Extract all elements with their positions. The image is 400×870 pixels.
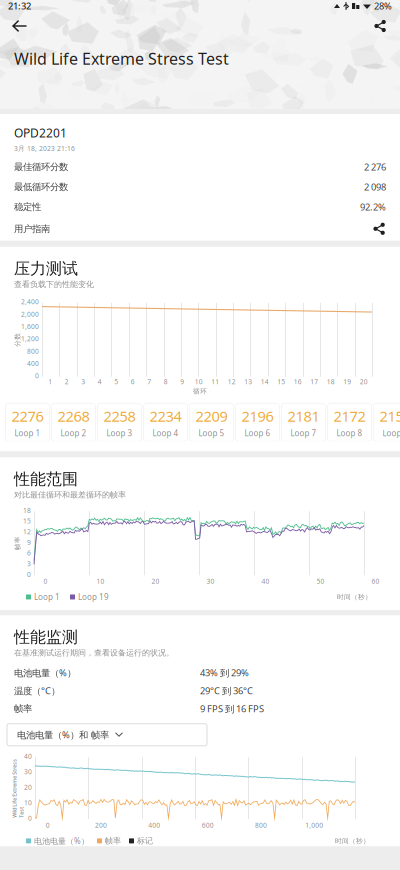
staticText: 60 xyxy=(371,577,379,586)
staticText: 21:32 xyxy=(8,0,31,12)
staticText: 20 xyxy=(151,577,159,586)
staticText: 1 xyxy=(48,377,52,386)
staticText: 800 xyxy=(255,821,267,830)
staticText: 17 xyxy=(310,377,318,386)
staticText: 6 xyxy=(27,548,31,557)
button[interactable]: Back xyxy=(4,13,36,39)
staticText: 0 xyxy=(27,570,31,579)
staticText: 18 xyxy=(327,377,335,386)
button[interactable]: 用户指南 xyxy=(0,217,400,241)
staticText: 3 xyxy=(81,377,85,386)
staticText: 10 xyxy=(96,577,104,586)
staticText: 3月 18, 2023 21:16 xyxy=(14,144,75,153)
staticText: 帧率 xyxy=(10,539,24,547)
staticText: 400 xyxy=(148,821,160,830)
staticText: 2,000 xyxy=(21,310,39,319)
staticText: 7 xyxy=(147,377,151,386)
staticText: 最低循环分数 xyxy=(14,181,68,193)
staticText: 1,000 xyxy=(305,821,323,830)
staticText: 40 xyxy=(24,752,32,761)
staticText: 电池电量（%）和 帧率 xyxy=(17,728,109,741)
staticText: 2196 xyxy=(241,406,273,426)
staticText: 2181 xyxy=(287,406,319,426)
staticText: 稳定性 xyxy=(14,201,41,213)
button[interactable]: 电池电量（%）和 帧率 xyxy=(7,724,207,746)
staticText: Loop 5 xyxy=(198,428,224,438)
staticText: Wild Life Extreme Stress Test xyxy=(14,48,229,69)
staticText: 压力测试 xyxy=(14,259,78,278)
staticText: 18 xyxy=(23,506,31,515)
staticText: Wild Life Extreme Stress Test xyxy=(0,781,47,795)
staticText: OPD2201 xyxy=(14,125,67,141)
staticText: 2 276 xyxy=(364,161,386,173)
staticText: Loop 8 xyxy=(336,428,362,438)
button[interactable]: Share xyxy=(364,13,396,39)
staticText: 2276 xyxy=(11,406,43,426)
staticText: 帧率 xyxy=(105,836,121,846)
staticText: Loop 2 xyxy=(60,428,86,438)
staticText: 16 xyxy=(294,377,302,386)
staticText: 800 xyxy=(27,347,39,356)
staticText: Loop 9 xyxy=(382,428,400,438)
staticText: 电池电量（%） xyxy=(34,836,89,846)
staticText: Loop 3 xyxy=(106,428,132,438)
staticText: 92.2% xyxy=(360,201,386,213)
staticText: 最佳循环分数 xyxy=(14,161,68,173)
staticText: 2234 xyxy=(149,406,181,426)
staticText: 20 xyxy=(360,377,368,386)
staticText: 时间（秒） xyxy=(335,837,370,845)
staticText: 在基准测试运行期间，查看设备运行的状况。 xyxy=(14,648,174,658)
staticText: 10 xyxy=(195,377,203,386)
staticText: 分数 xyxy=(10,336,24,344)
staticText: Loop 19 xyxy=(78,592,109,602)
staticText: 0 xyxy=(28,814,32,823)
staticText: 0 xyxy=(43,577,47,586)
staticText: 温度（°C） xyxy=(14,684,60,697)
staticText: 2258 xyxy=(103,406,135,426)
staticText: 30 xyxy=(24,767,32,776)
staticText: 5 xyxy=(114,377,118,386)
staticText: Loop 1 xyxy=(34,592,60,602)
staticText: 43% 到 29% xyxy=(200,666,249,679)
staticText: 40 xyxy=(261,577,269,586)
staticText: 循环 xyxy=(193,387,207,395)
staticText: 电池电量（%） xyxy=(14,666,76,679)
staticText: 9 xyxy=(27,538,31,547)
staticText: 性能范围 xyxy=(14,469,78,489)
staticText: 9 FPS 到 16 FPS xyxy=(200,702,264,715)
staticText: 19 xyxy=(343,377,351,386)
staticText: Loop 4 xyxy=(152,428,178,438)
staticText: 30 xyxy=(206,577,214,586)
staticText: 8 xyxy=(164,377,168,386)
staticText: 4 xyxy=(98,377,102,386)
staticText: 20 xyxy=(24,783,32,792)
staticText: 10 xyxy=(24,798,32,807)
staticText: 对比最佳循环和最差循环的帧率 xyxy=(14,490,126,500)
staticText: 1,600 xyxy=(21,322,39,331)
staticText: 400 xyxy=(27,359,39,368)
staticText: 15 xyxy=(23,516,31,525)
staticText: Loop 1 xyxy=(14,428,40,438)
staticText: 28% xyxy=(374,0,392,12)
staticText: 29°C 到 36°C xyxy=(200,684,253,697)
staticText: 13 xyxy=(244,377,252,386)
staticText: 600 xyxy=(202,821,214,830)
staticText: 11 xyxy=(211,377,219,386)
staticText: 2 098 xyxy=(364,181,386,193)
staticText: 9 xyxy=(180,377,184,386)
staticText: 用户指南 xyxy=(14,223,50,235)
staticText: 12 xyxy=(228,377,236,386)
staticText: 2209 xyxy=(195,406,227,426)
staticText: 2 xyxy=(65,377,69,386)
staticText: Loop 7 xyxy=(290,428,316,438)
staticText: 2172 xyxy=(333,406,365,426)
staticText: 性能监测 xyxy=(14,627,78,647)
staticText: 时间（秒） xyxy=(337,593,372,601)
staticText: 1,200 xyxy=(21,334,39,343)
staticText: 3 xyxy=(27,559,31,568)
staticText: 200 xyxy=(95,821,107,830)
staticText: 0 xyxy=(46,821,50,830)
staticText: 15 xyxy=(277,377,285,386)
staticText: 2268 xyxy=(57,406,89,426)
staticText: 0 xyxy=(35,371,39,380)
